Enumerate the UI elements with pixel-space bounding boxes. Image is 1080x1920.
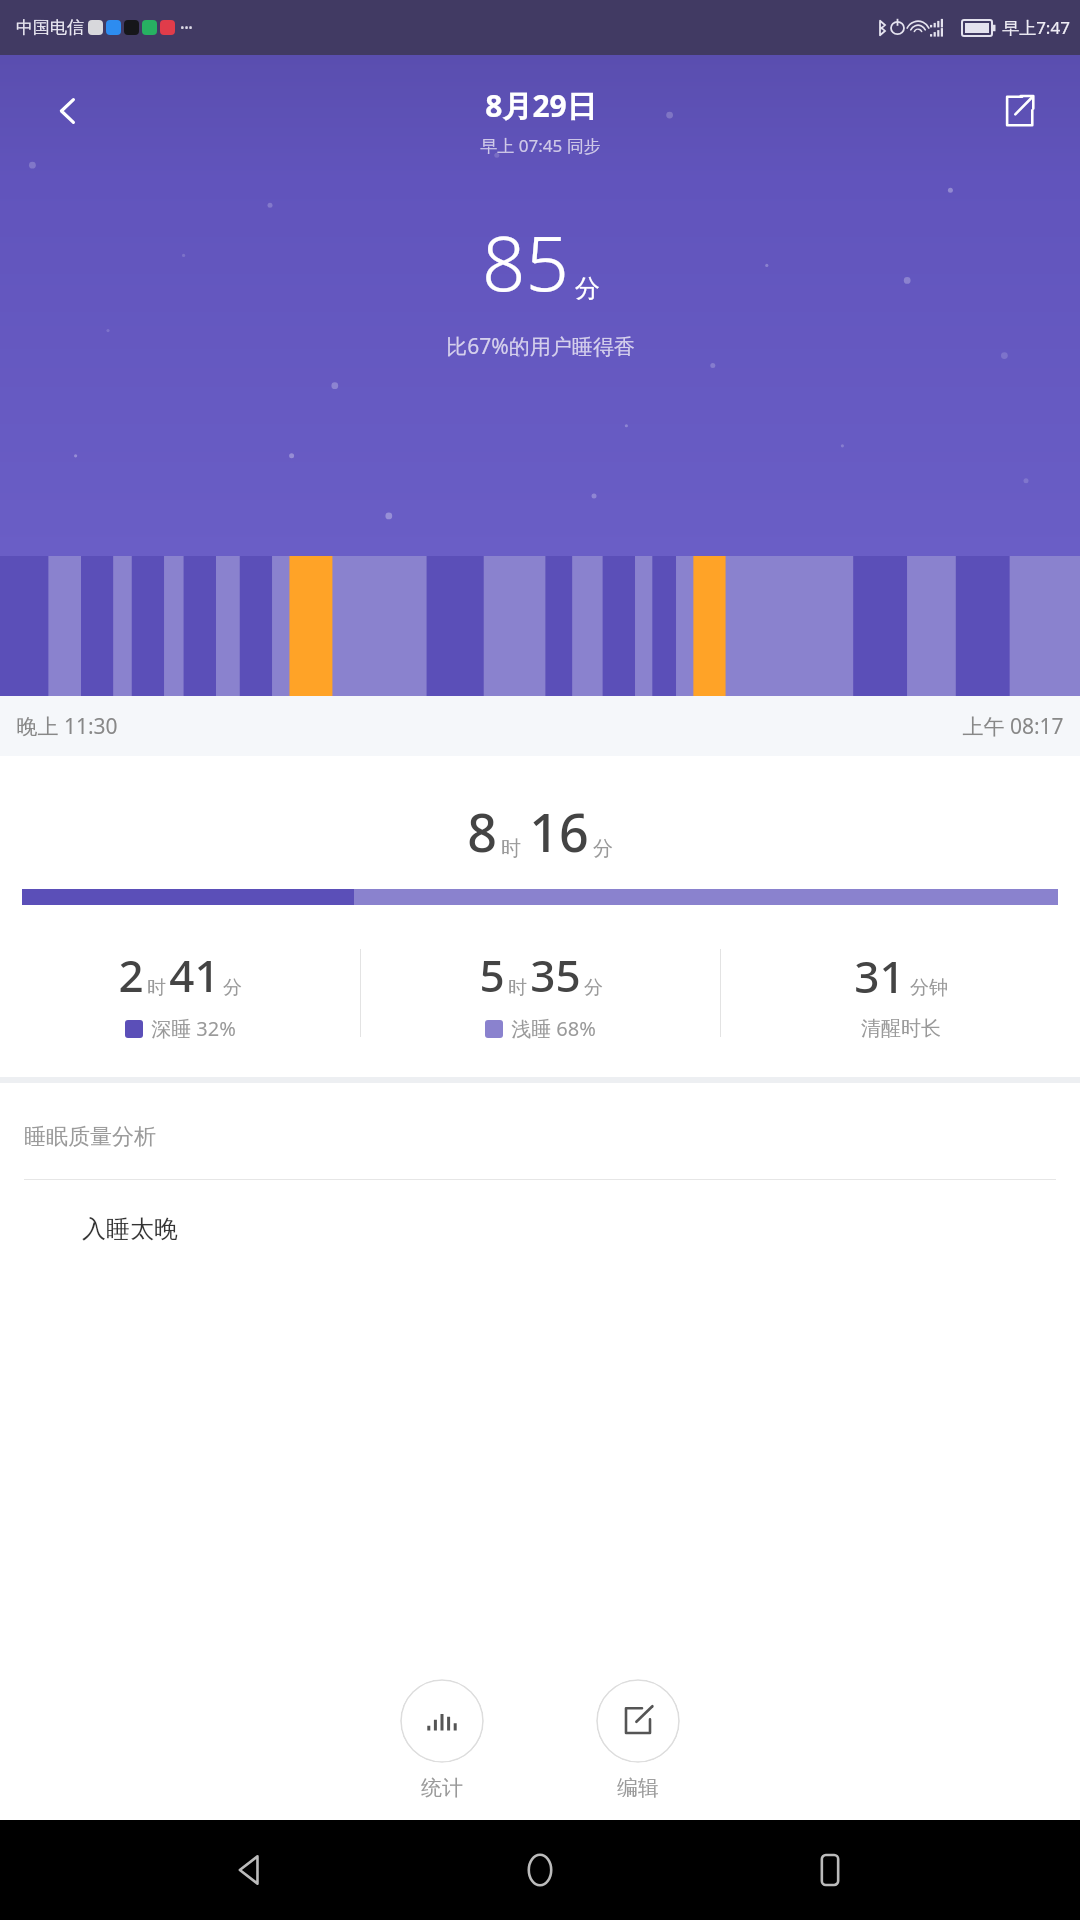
staticText: 时 xyxy=(501,836,521,861)
staticText: ••• xyxy=(180,20,193,35)
staticText: 早上 07:45 同步 xyxy=(480,134,601,157)
button[interactable]: 统计 xyxy=(394,1673,490,1807)
staticText: 上午 08:17 xyxy=(962,712,1064,741)
staticText: 睡眠质量分析 xyxy=(24,1123,156,1151)
staticText: 16 xyxy=(529,796,589,867)
button[interactable]: 编辑 xyxy=(590,1673,686,1807)
staticText: 41 xyxy=(169,945,220,1005)
button[interactable]: 返回 xyxy=(40,83,96,139)
staticText: 时 xyxy=(147,976,166,1000)
staticText: 31 xyxy=(854,946,905,1006)
staticText: 35 xyxy=(530,945,581,1005)
staticText: 分 xyxy=(593,836,613,861)
staticText: 中国电信 xyxy=(16,17,84,38)
staticText: 分 xyxy=(575,273,600,304)
button[interactable]: 返回 xyxy=(210,1830,290,1910)
button[interactable]: 分享 xyxy=(988,81,1048,141)
button[interactable]: 主页 xyxy=(500,1830,580,1910)
staticText: 浅睡 68% xyxy=(511,1015,596,1042)
staticText: 清醒时长 xyxy=(861,1016,941,1041)
staticText: 时 xyxy=(508,976,527,1000)
staticText: 分 xyxy=(223,976,242,1000)
staticText: 8月29日 xyxy=(485,85,597,126)
staticText: 深睡 32% xyxy=(151,1015,236,1042)
staticText: 比67%的用户睡得香 xyxy=(446,332,635,361)
staticText: 8 xyxy=(467,796,497,867)
staticText: 晚上 11:30 xyxy=(16,712,118,741)
staticText: 统计 xyxy=(421,1775,463,1801)
staticText: 分 xyxy=(584,976,603,1000)
staticText: 编辑 xyxy=(617,1775,659,1801)
button[interactable]: 最近任务 xyxy=(790,1830,870,1910)
staticText: 早上7:47 xyxy=(1002,16,1070,39)
staticText: 分钟 xyxy=(910,976,948,1000)
staticText: 入睡太晚 xyxy=(82,1214,178,1244)
staticText: 2 xyxy=(118,945,144,1005)
staticText: 5 xyxy=(479,945,505,1005)
staticText: 85 xyxy=(482,210,569,314)
